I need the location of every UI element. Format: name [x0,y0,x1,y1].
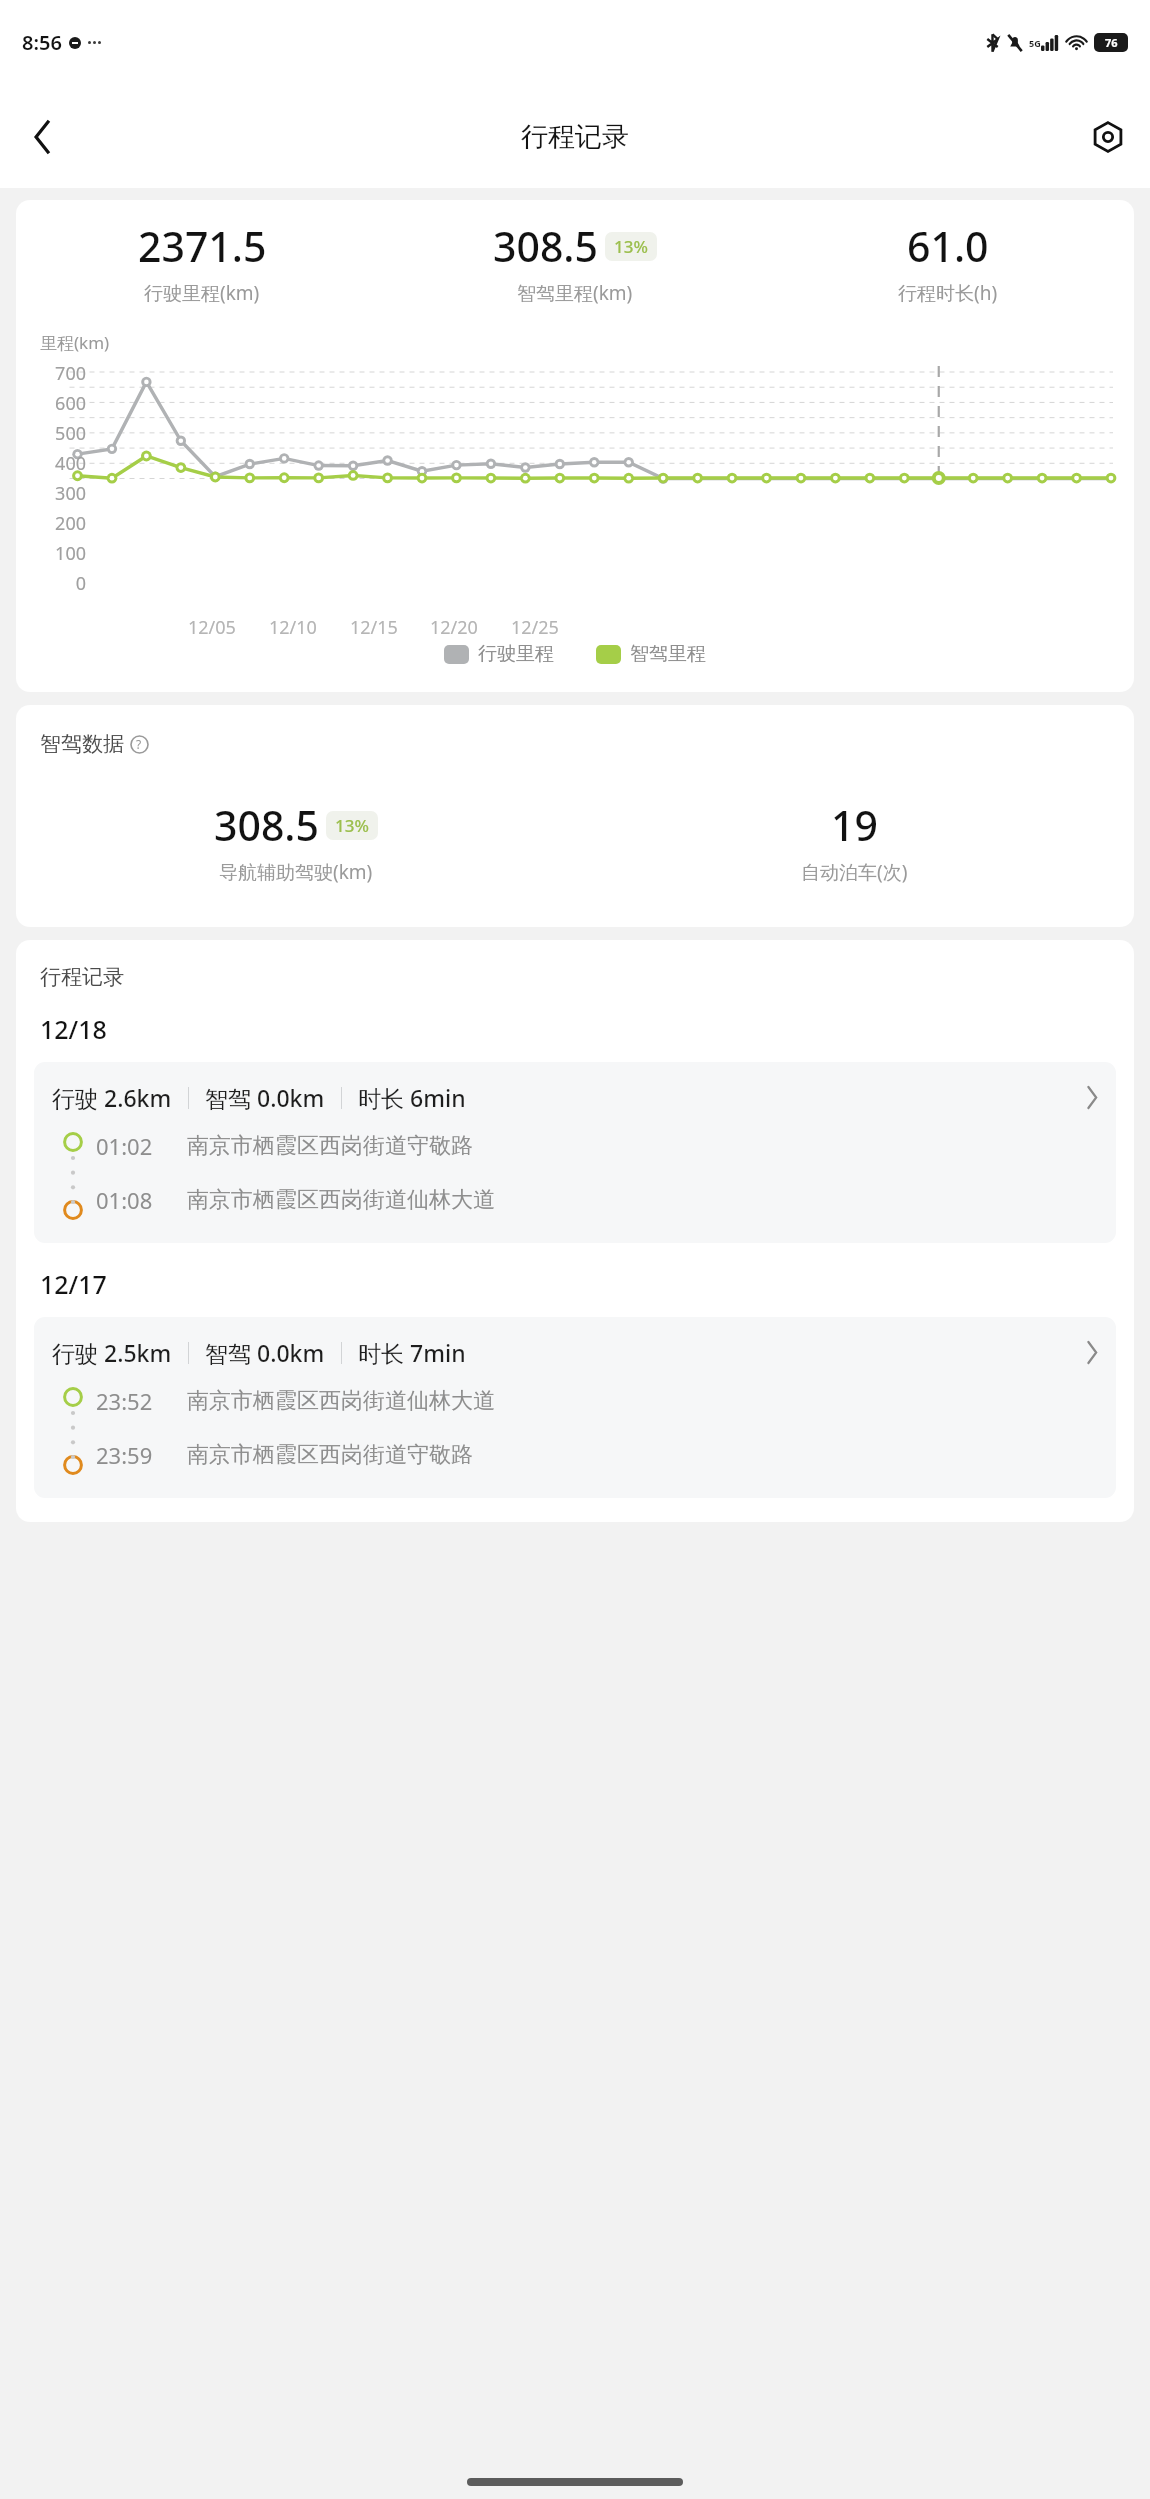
staticText: 里程(km) [40,331,110,354]
staticText: 导航辅助驾驶(km) [219,859,373,885]
staticText: 12/25 [511,615,559,640]
staticText: 308.5 [493,218,598,274]
staticText: 300 [55,481,86,506]
staticText: 19 [831,797,878,853]
staticText: 308.5 [214,797,319,853]
staticText: 智驾 0.0km [205,1337,325,1368]
staticText: 行驶里程(km) [144,280,260,306]
staticText: 行驶 2.5km [52,1337,172,1368]
staticText: 12/10 [269,615,317,640]
staticText: 12/17 [40,1267,107,1301]
staticText: 400 [55,451,86,476]
button[interactable]: 行驶 2.5km [34,1317,1116,1498]
staticText: 南京市栖霞区西岗街道仙林大道 [187,1186,495,1214]
staticText: 23:52 [96,1386,153,1416]
staticText: 600 [55,391,86,416]
staticText: 700 [55,361,86,386]
staticText: 23:59 [96,1440,153,1470]
staticText: 13% [335,814,369,837]
staticText: 南京市栖霞区西岗街道守敬路 [187,1132,473,1160]
staticText: 12/18 [40,1012,107,1046]
button[interactable]: Settings [1080,109,1136,165]
staticText: 行程记录 [40,964,124,990]
staticText: 行程记录 [521,120,629,154]
staticText: 61.0 [907,218,989,274]
staticText: 12/20 [430,615,478,640]
staticText: 12/15 [350,615,398,640]
staticText: 行驶 2.6km [52,1082,172,1113]
staticText: 01:02 [96,1131,153,1161]
staticText: 12/05 [188,615,236,640]
staticText: 自动泊车(次) [801,859,908,885]
staticText: 500 [55,421,86,446]
staticText: 01:08 [96,1185,153,1215]
staticText: 南京市栖霞区西岗街道守敬路 [187,1441,473,1469]
staticText: 200 [55,511,86,536]
staticText: 智驾数据 [40,731,124,757]
staticText: 76 [1105,35,1118,50]
staticText: 行驶里程 [478,642,554,666]
staticText: ? [136,736,142,752]
staticText: 智驾里程 [630,642,706,666]
staticText: 南京市栖霞区西岗街道仙林大道 [187,1387,495,1415]
staticText: 100 [55,541,86,566]
staticText: 2371.5 [138,218,267,274]
staticText: 8:56 [22,29,62,56]
staticText: 时长 7min [358,1337,466,1368]
staticText: 行程时长(h) [898,280,998,306]
staticText: 智驾 0.0km [205,1082,325,1113]
staticText: 13% [614,235,648,258]
staticText: 0 [75,571,86,596]
staticText: 时长 6min [358,1082,466,1113]
button[interactable]: 行驶 2.6km [34,1062,1116,1243]
staticText: 5G [1029,37,1041,49]
staticText: 智驾里程(km) [517,280,633,306]
button[interactable]: Help [129,734,149,754]
button[interactable]: Back [14,109,70,165]
